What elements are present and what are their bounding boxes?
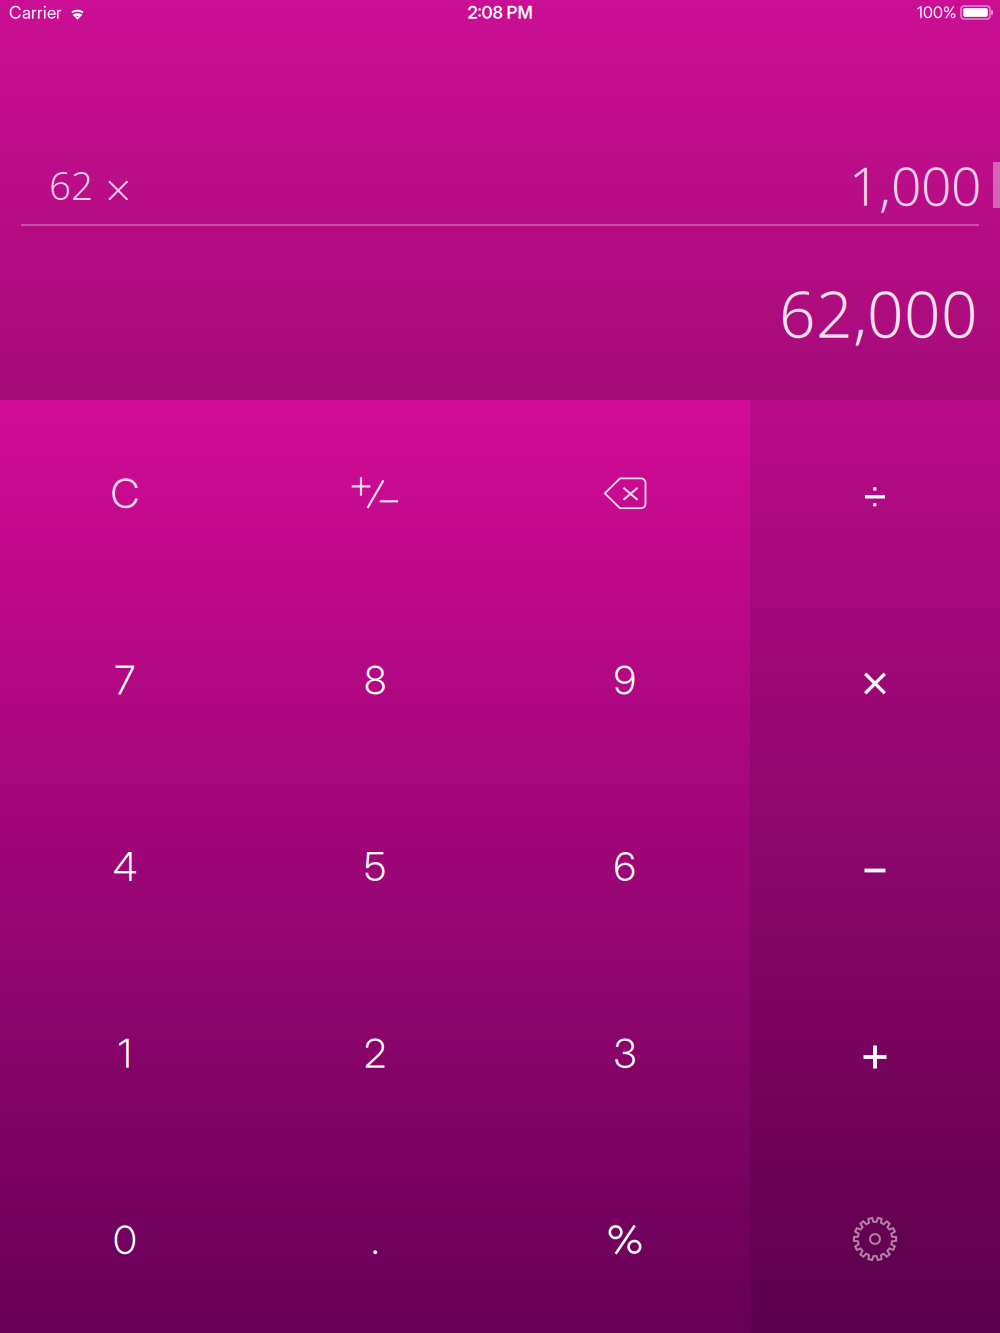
staticText: 100% [917,3,957,22]
staticText: 9 [613,656,636,704]
staticText: 1,000 [849,149,981,221]
staticText: 7 [114,656,135,704]
staticText: 62 [49,159,93,211]
button[interactable]: Plus [750,964,1000,1150]
button[interactable]: 3 [500,960,750,1146]
button[interactable]: 6 [500,773,750,960]
button[interactable]: 8 [250,587,500,773]
button[interactable]: Delete [500,400,750,587]
button[interactable]: 0 [0,1146,250,1333]
button[interactable]: 5 [250,773,500,960]
staticText: 8 [364,656,386,704]
staticText: 0 [113,1215,137,1264]
staticText: Carrier [9,2,62,23]
button[interactable]: Clear [0,400,250,587]
staticText: 62,000 [779,269,978,357]
staticText: 6 [613,842,636,891]
button[interactable]: Multiply [750,590,1000,777]
staticText: 2:08 PM [467,2,532,23]
staticText: 2 [364,1029,386,1077]
button[interactable]: 7 [0,587,250,773]
button[interactable]: 1 [0,960,250,1146]
button[interactable]: Divide [750,403,1000,590]
button[interactable]: Plus minus [250,400,500,587]
staticText: 1 [118,1029,132,1077]
staticText: C [110,468,139,518]
button[interactable]: Settings [750,1150,1000,1333]
button[interactable]: . [250,1146,500,1333]
button[interactable]: 2 [250,960,500,1146]
staticText: . [371,1215,379,1264]
staticText: 4 [113,842,137,891]
button[interactable]: 4 [0,773,250,960]
button[interactable]: Minus [750,777,1000,964]
staticText: 5 [364,842,386,891]
button[interactable]: 9 [500,587,750,773]
button[interactable]: Percent [500,1146,750,1333]
staticText: 3 [613,1029,636,1077]
